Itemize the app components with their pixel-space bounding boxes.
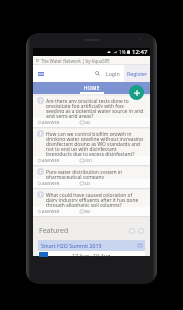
staticText: The Water Network | by AquaSPE <box>41 58 110 64</box>
staticText: Pure water distribution system in <box>46 169 123 174</box>
staticText: Smart H2O Summit 2015 <box>41 242 102 249</box>
staticText: How can we control biofilm growth in <box>46 131 132 136</box>
staticText: ANSWER <box>42 120 60 126</box>
staticText: disinfectant dosing as WQ standards and <box>46 141 141 146</box>
button[interactable]: Menu <box>35 68 46 79</box>
button[interactable]: Add <box>129 85 144 100</box>
staticText: seeding as a potential water source in a… <box>46 108 144 113</box>
button[interactable]: Next <box>138 228 144 234</box>
button[interactable]: Pure water distribution system in <box>33 167 150 190</box>
button[interactable]: What could have caused coloration of <box>33 190 150 218</box>
staticText: Featured <box>39 226 69 236</box>
staticText: dairy industry effluents after it has go… <box>46 197 139 202</box>
button[interactable]: Register <box>124 65 150 82</box>
staticText: (4) <box>85 120 90 126</box>
button[interactable]: Smart H2O Summit 2015 <box>38 240 145 256</box>
staticText: ANSWER <box>42 158 60 164</box>
staticText: precipitate fog artificially with fog- <box>46 103 125 108</box>
button[interactable]: HOME <box>80 82 104 94</box>
staticText: through allophanic soil columns? <box>46 202 122 207</box>
staticText: ANSWER <box>42 209 60 215</box>
staticText: (31) <box>85 158 93 164</box>
staticText: Login <box>106 70 120 77</box>
staticText: pharmaceutical company <box>46 174 105 179</box>
staticText: Are there any practical tests done to <box>46 98 129 103</box>
staticText: (6) <box>85 209 90 215</box>
staticText: What could have caused coloration of <box>46 192 133 197</box>
staticText: Register <box>127 70 148 77</box>
staticText: not to end up with disinfectant <box>46 146 117 151</box>
staticText: 1% <box>119 49 126 55</box>
button[interactable]: Search <box>92 68 103 79</box>
button[interactable]: Login <box>103 66 123 81</box>
button[interactable]: Are there any practical tests done to <box>33 96 150 129</box>
button[interactable]: Previous <box>129 228 135 234</box>
staticText: ANSWER <box>42 181 60 187</box>
staticText: 12:47 <box>132 48 148 56</box>
staticText: drinking water pipeline without increasi… <box>46 136 144 141</box>
staticText: and semi-arid areas? <box>46 113 94 118</box>
staticText: 17 Aug - 19 Aug <box>72 252 111 257</box>
staticText: HOME <box>84 85 100 91</box>
staticText: (2) <box>85 181 90 187</box>
staticText: byproducts due to excess disinfectant? <box>46 151 135 156</box>
button[interactable]: How can we control biofilm growth in <box>33 129 150 167</box>
